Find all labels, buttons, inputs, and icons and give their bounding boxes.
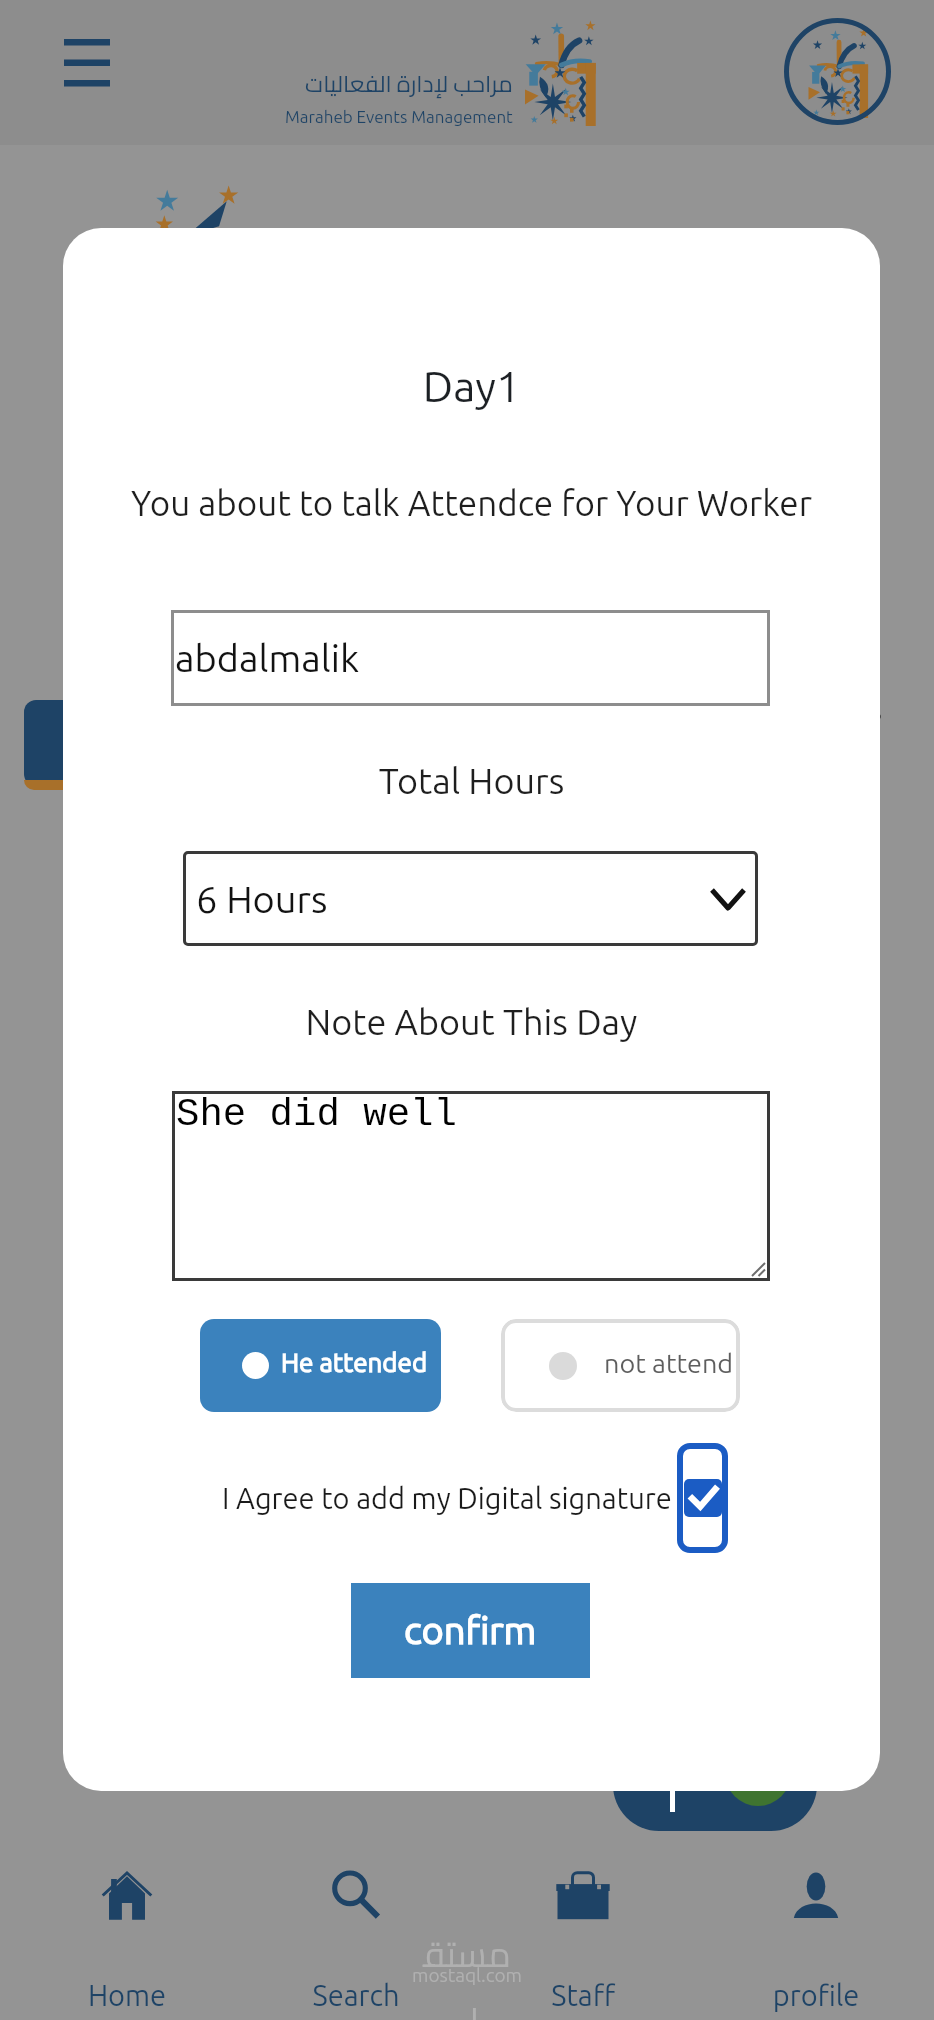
staticText: Home	[10, 1979, 244, 2012]
staticText: confirm	[404, 1609, 537, 1652]
button[interactable]: Menu	[42, 16, 138, 112]
staticText: Day1	[63, 362, 880, 410]
staticText: You about to talk Attendce for Your Work…	[63, 483, 880, 522]
staticText: She did well	[176, 1093, 457, 1137]
staticText: I Agree to add my Digital signature	[222, 1482, 672, 1515]
staticText: Maraheb Events Management	[285, 107, 513, 126]
button[interactable]: 6 Hours	[183, 851, 758, 946]
staticText: mostaql.com	[411, 1964, 523, 1985]
staticText: not attend	[604, 1348, 734, 1378]
staticText: profile	[699, 1979, 933, 2012]
staticText: مراحب لإدارة الفعاليات	[305, 62, 513, 105]
staticText: Staff	[466, 1979, 700, 2012]
button[interactable]: confirm	[351, 1583, 590, 1678]
button[interactable]: Home	[0, 1845, 234, 2020]
button[interactable]: I agree to add my digital signature	[677, 1443, 728, 1553]
staticText: 6 Hours	[196, 878, 328, 921]
button[interactable]: abdalmalik	[171, 610, 770, 706]
button[interactable]: Search	[234, 1845, 468, 2020]
button[interactable]: Account	[784, 18, 891, 125]
staticText: He attended	[281, 1348, 428, 1377]
staticText: مستقل	[411, 1920, 523, 2020]
staticText: abdalmalik	[175, 637, 360, 680]
button[interactable]: Staff	[467, 1845, 701, 2020]
button[interactable]: She did well	[172, 1091, 770, 1281]
staticText: Note About This Day	[63, 1001, 880, 1041]
button[interactable]: He attended	[200, 1319, 441, 1412]
staticText: Search	[239, 1979, 473, 2012]
button[interactable]: not attend	[501, 1319, 740, 1412]
staticText: Total Hours	[63, 760, 880, 800]
button[interactable]: profile	[701, 1845, 934, 2020]
